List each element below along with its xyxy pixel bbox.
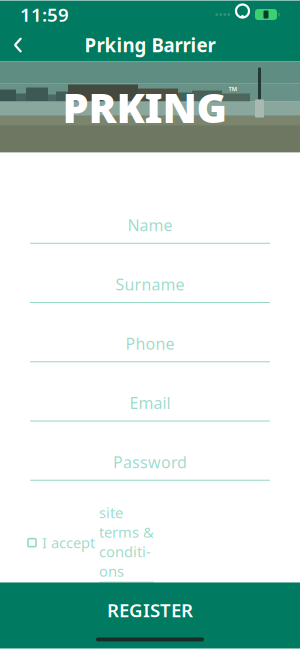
button[interactable]: I accept (0, 481, 300, 582)
staticText: I accept (42, 533, 99, 552)
staticText: Surname (115, 274, 184, 295)
staticText: Prking Barrier (84, 33, 215, 57)
staticText: Email (129, 392, 170, 413)
staticText: site terms & conditions (99, 503, 154, 581)
staticText: Password (113, 451, 187, 473)
staticText: REGISTER (107, 598, 193, 622)
staticText: 11:59 (20, 2, 69, 27)
staticText: Name (127, 214, 172, 236)
button[interactable]: Back (0, 28, 36, 61)
staticText: ™ (228, 83, 237, 98)
staticText: Phone (125, 333, 174, 354)
button[interactable]: REGISTER (0, 582, 300, 648)
staticText: PRKING (62, 80, 227, 134)
